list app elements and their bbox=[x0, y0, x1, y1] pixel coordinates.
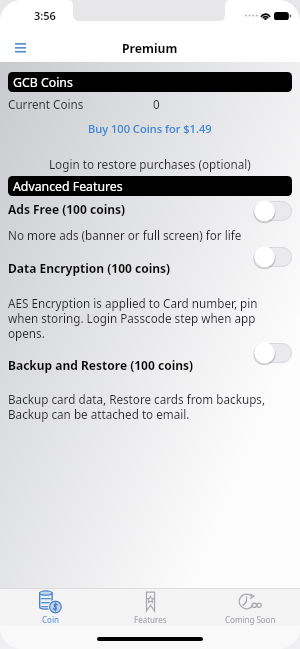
staticText: Backup and Restore (100 coins) bbox=[8, 357, 194, 373]
staticText: Backup card data, Restore cards from bac… bbox=[8, 391, 286, 422]
staticText: Coming Soon bbox=[225, 614, 276, 625]
staticText: Coin bbox=[42, 614, 59, 625]
staticText: Features bbox=[134, 614, 167, 625]
staticText: 0 bbox=[153, 96, 160, 112]
button[interactable]: Toggle Ads Free bbox=[254, 201, 292, 221]
staticText: 3:56 bbox=[34, 8, 56, 23]
button[interactable]: Buy 100 Coins for $1.49 bbox=[0, 119, 300, 137]
button[interactable]: Features bbox=[100, 588, 200, 626]
staticText: Premium bbox=[122, 40, 178, 57]
staticText: Advanced Features bbox=[13, 178, 123, 195]
button[interactable]: Login to restore purchases (optional) bbox=[0, 155, 300, 173]
staticText: Buy 100 Coins for $1.49 bbox=[88, 121, 212, 136]
staticText: Current Coins bbox=[8, 96, 84, 112]
staticText: AES Encryption is applied to Card number… bbox=[8, 295, 278, 341]
staticText: Ads Free (100 coins) bbox=[8, 201, 126, 217]
staticText: Login to restore purchases (optional) bbox=[49, 156, 251, 172]
button[interactable]: Coin bbox=[0, 588, 100, 626]
staticText: Data Encryption (100 coins) bbox=[8, 260, 171, 276]
button[interactable]: Toggle Data Encryption bbox=[254, 247, 292, 267]
button[interactable]: Open navigation menu bbox=[3, 30, 37, 64]
staticText: GCB Coins bbox=[13, 74, 73, 91]
button[interactable]: Toggle Backup and Restore bbox=[254, 343, 292, 363]
staticText: No more ads (banner or full screen) for … bbox=[8, 227, 242, 243]
button[interactable]: Coming Soon bbox=[200, 588, 300, 626]
